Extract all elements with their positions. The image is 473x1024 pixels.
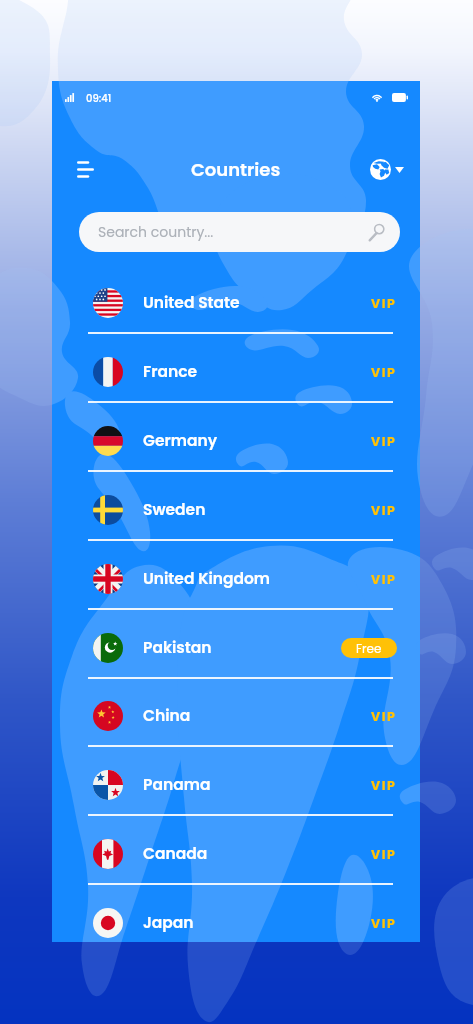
button[interactable]: United Kingdom bbox=[52, 551, 420, 607]
staticText: Canada bbox=[143, 843, 208, 865]
button[interactable]: Sweden bbox=[52, 482, 420, 538]
staticText: VIP bbox=[371, 571, 397, 588]
button[interactable]: Canada bbox=[52, 826, 420, 882]
staticText: France bbox=[143, 361, 198, 383]
staticText: Germany bbox=[143, 430, 218, 452]
button[interactable]: Change language bbox=[366, 153, 408, 186]
staticText: VIP bbox=[371, 433, 397, 450]
button[interactable]: Japan bbox=[52, 895, 420, 951]
staticText: VIP bbox=[371, 777, 397, 794]
staticText: VIP bbox=[371, 364, 397, 381]
staticText: Countries bbox=[191, 157, 281, 182]
staticText: Sweden bbox=[143, 499, 206, 521]
staticText: VIP bbox=[371, 502, 397, 519]
staticText: Pakistan bbox=[143, 637, 212, 659]
staticText: Search country... bbox=[98, 222, 214, 242]
button[interactable]: Search country... bbox=[79, 212, 400, 252]
button[interactable]: France bbox=[52, 344, 420, 400]
staticText: VIP bbox=[371, 295, 397, 312]
staticText: Japan bbox=[143, 912, 194, 934]
button[interactable]: Germany bbox=[52, 413, 420, 469]
staticText: 09:41 bbox=[86, 91, 112, 103]
staticText: China bbox=[143, 705, 191, 727]
button[interactable]: United State bbox=[52, 275, 420, 331]
staticText: VIP bbox=[371, 915, 397, 932]
staticText: Free bbox=[356, 640, 382, 657]
button[interactable]: Pakistan bbox=[52, 620, 420, 676]
staticText: United Kingdom bbox=[143, 568, 271, 590]
staticText: VIP bbox=[371, 708, 397, 725]
staticText: VIP bbox=[371, 846, 397, 863]
staticText: Panama bbox=[143, 774, 211, 796]
button[interactable]: Panama bbox=[52, 757, 420, 813]
button[interactable]: China bbox=[52, 688, 420, 744]
button[interactable]: Menu bbox=[68, 152, 102, 186]
staticText: United State bbox=[143, 292, 240, 314]
